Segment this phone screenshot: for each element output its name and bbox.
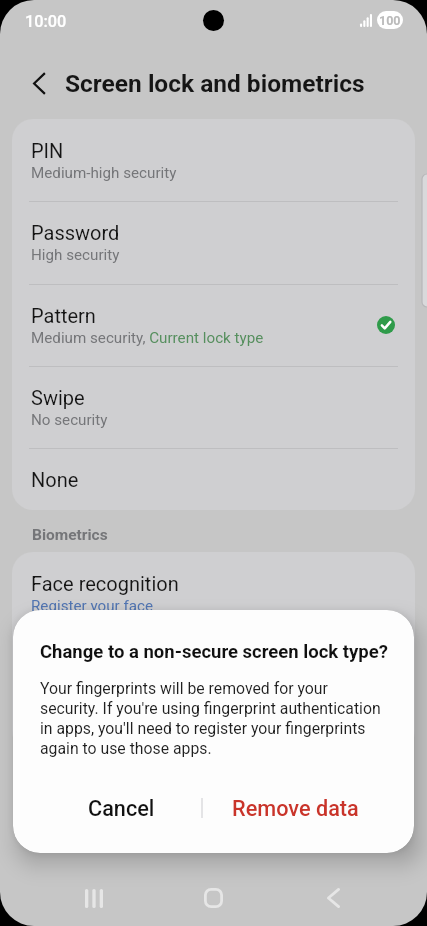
staticText: No security — [31, 411, 108, 429]
button[interactable]: Password — [12, 201, 415, 283]
staticText: Change to a non-secure screen lock type? — [40, 641, 388, 663]
button[interactable]: Fingerprints — [12, 634, 415, 716]
staticText: None — [31, 468, 79, 491]
button[interactable]: PIN — [12, 119, 415, 201]
staticText: Cancel — [88, 796, 155, 821]
staticText: Register fingerprints — [31, 679, 168, 697]
staticText: High security — [31, 246, 120, 264]
staticText: Face recognition — [31, 572, 179, 595]
staticText: PIN — [31, 139, 64, 162]
button[interactable]: Recent apps — [34, 870, 153, 926]
staticText: Fingerprints — [31, 654, 138, 677]
staticText: Medium-high security — [31, 164, 177, 182]
button[interactable]: Pattern — [12, 284, 415, 366]
staticText: Biometrics — [32, 526, 108, 544]
staticText: Register your face — [31, 597, 153, 615]
staticText: Pattern — [31, 304, 96, 327]
button[interactable]: Remove data — [208, 788, 383, 828]
button[interactable]: Cancel — [34, 788, 208, 828]
staticText: Screen lock and biometrics — [65, 69, 365, 98]
staticText: Password — [31, 221, 120, 244]
staticText: Your fingerprints will be removed for yo… — [40, 679, 387, 758]
button[interactable]: Back — [273, 870, 393, 926]
button[interactable]: Navigate up — [17, 61, 61, 105]
staticText: 10:00 — [25, 12, 67, 31]
button[interactable]: Swipe — [12, 366, 415, 449]
staticText: Remove data — [232, 796, 359, 821]
button[interactable]: Face recognition — [12, 552, 415, 634]
staticText: Medium security, Current lock type — [31, 329, 264, 347]
staticText: Swipe — [31, 386, 85, 409]
button[interactable]: Home — [153, 870, 273, 926]
button[interactable]: None — [12, 448, 415, 510]
staticText: 100 — [379, 13, 401, 28]
